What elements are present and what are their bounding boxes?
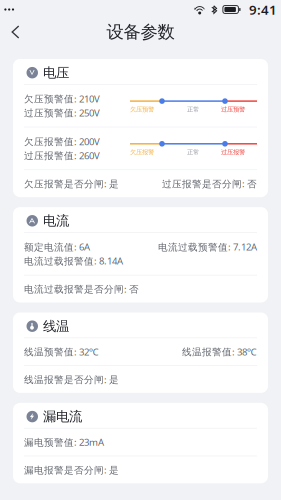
staticText: 电流过载报警是否分闸: 否 (24, 283, 139, 295)
staticText: 线温报警值: 38℃ (182, 345, 257, 358)
staticText: 欠压预警 (130, 106, 154, 113)
staticText: 9:41 (249, 1, 277, 18)
staticText: 漏电报警是否分闸: 是 (24, 463, 119, 476)
staticText: 欠压报警值: 200V (24, 135, 100, 148)
staticText: 线温 (43, 318, 69, 334)
staticText: 电流过载预警值: 7.12A (158, 240, 257, 253)
staticText: 电流 (43, 213, 69, 229)
staticText: 欠压报警 (130, 148, 154, 156)
staticText: 电压 (43, 64, 69, 81)
staticText: 电流过载报警值: 8.14A (24, 254, 123, 267)
staticText: 漏电预警值: 23mA (24, 436, 104, 448)
staticText: 过压报警是否分闸: 否 (162, 177, 257, 190)
staticText: 过压报警 (221, 148, 245, 156)
staticText: 过压报警值: 260V (24, 149, 100, 162)
staticText: 正常 (187, 106, 199, 113)
staticText: 欠压报警是否分闸: 是 (24, 177, 119, 190)
staticText: 线温预警值: 32℃ (24, 345, 99, 358)
staticText: 设备参数 (106, 21, 174, 43)
staticText: 正常 (187, 148, 199, 156)
staticText: 漏电流 (43, 408, 82, 425)
staticText: 额定电流值: 6A (24, 240, 90, 253)
staticText: 过压预警值: 250V (24, 106, 100, 119)
staticText: 过压预警 (221, 106, 245, 113)
staticText: 欠压预警值: 210V (24, 92, 100, 105)
staticText: 线温报警是否分闸: 是 (24, 373, 119, 386)
button[interactable]: Back (0, 19, 29, 45)
